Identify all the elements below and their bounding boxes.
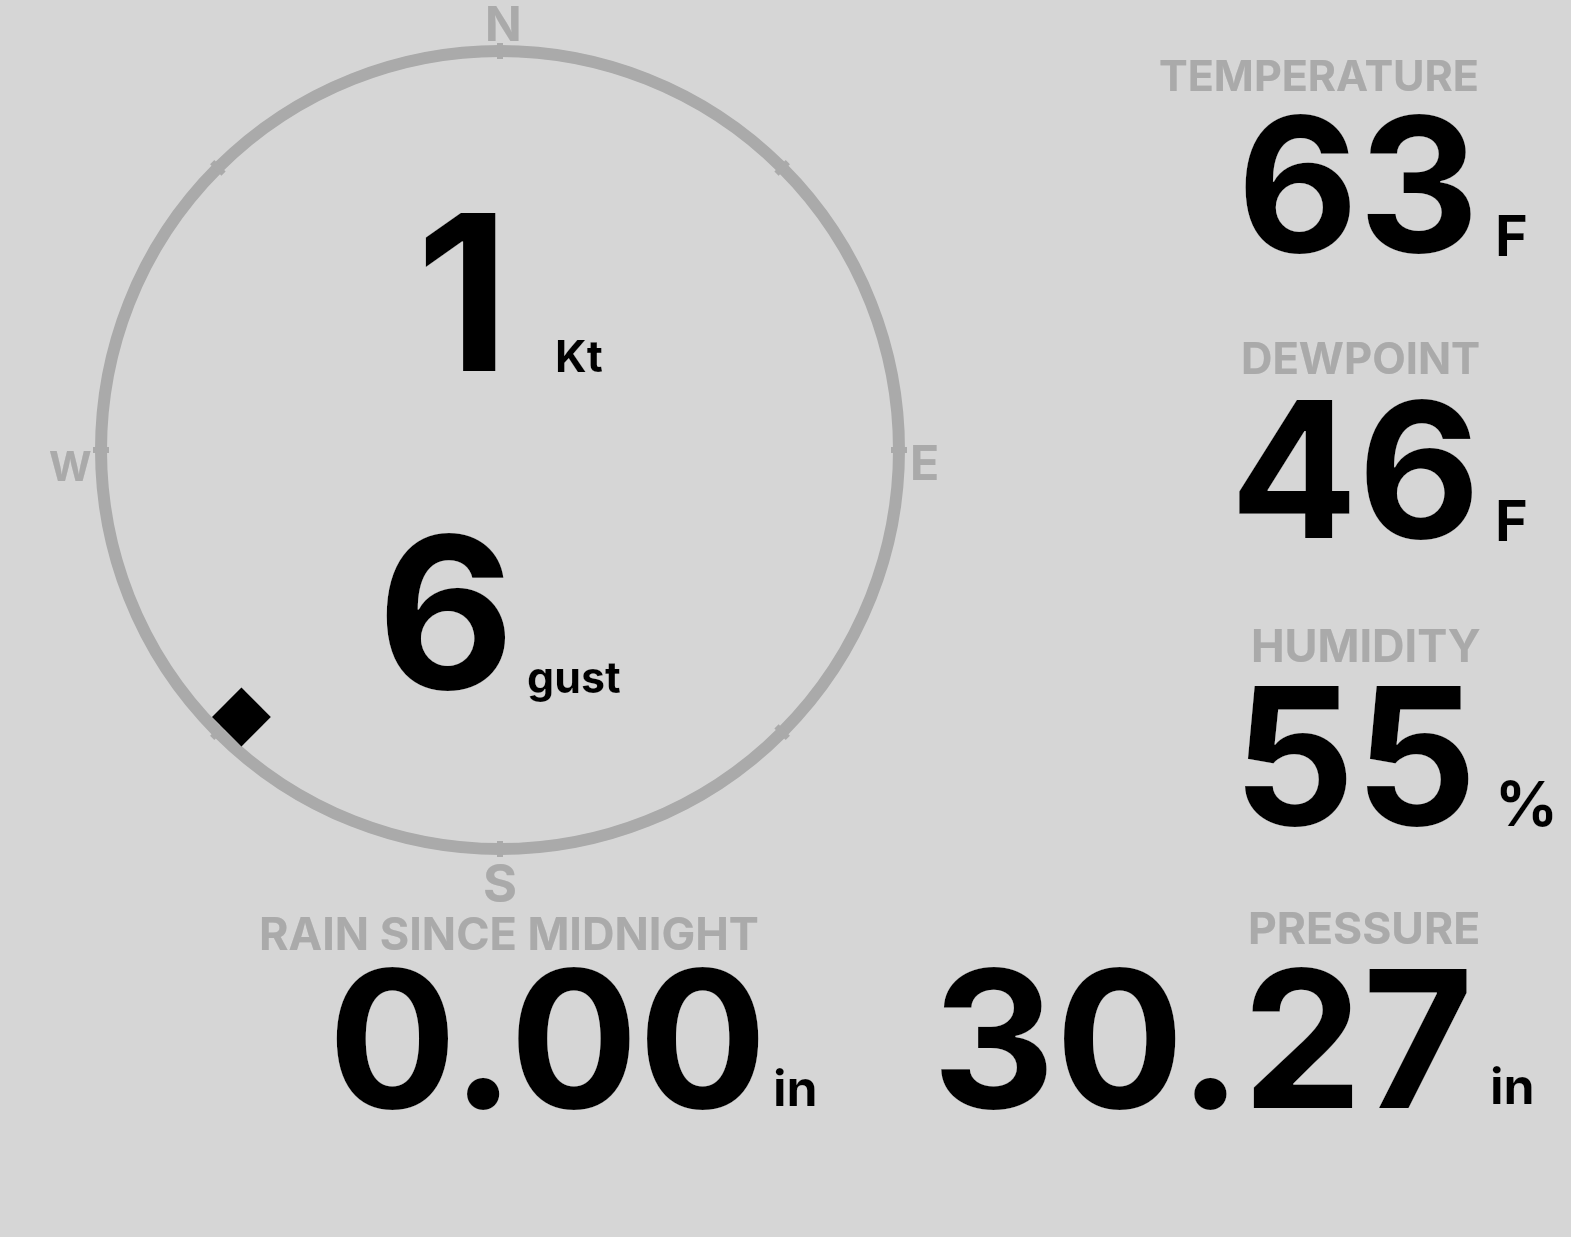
staticText: TEMPERATURE [1159,49,1479,101]
button[interactable]: Wind 1 knots, gusting 6, direction south… [90,40,910,860]
staticText: 0.00 [328,923,767,1154]
button[interactable]: Temperature 63 degrees Fahrenheit [1150,45,1571,265]
staticText: 46 [1230,355,1481,584]
staticText: gust [527,651,621,703]
staticText: PRESSURE [1248,901,1481,955]
staticText: RAIN SINCE MIDNIGHT [259,906,759,960]
staticText: DEWPOINT [1241,332,1481,385]
staticText: Kt [555,329,603,382]
staticText: E [910,433,940,491]
button[interactable]: Rain since midnight 0.00 inches [240,900,840,1120]
staticText: F [1495,487,1528,555]
staticText: 6 [377,484,515,741]
staticText: 30.27 [932,923,1474,1154]
staticText: W [49,441,92,491]
button[interactable]: Humidity 55 percent [1150,615,1571,835]
staticText: N [485,0,522,52]
button[interactable]: Pressure 30.27 inches [900,900,1560,1120]
staticText: % [1495,766,1558,841]
staticText: in [773,1058,818,1118]
staticText: 1 [416,161,510,424]
button[interactable]: Dewpoint 46 degrees Fahrenheit [1150,330,1571,550]
staticText: F [1495,202,1528,270]
staticText: in [1490,1056,1535,1116]
staticText: S [483,852,518,915]
staticText: HUMIDITY [1251,618,1481,672]
staticText: 55 [1233,640,1478,871]
staticText: 63 [1237,71,1480,297]
